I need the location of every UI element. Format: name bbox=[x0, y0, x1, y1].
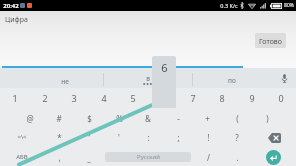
button[interactable]: Voice input bbox=[272, 68, 296, 88]
staticText: ! bbox=[207, 132, 210, 143]
staticText: _ bbox=[87, 152, 91, 163]
button[interactable]: не bbox=[0, 68, 103, 88]
staticText: " bbox=[87, 132, 91, 143]
staticText: , bbox=[58, 152, 61, 163]
staticText: - bbox=[177, 113, 180, 124]
button[interactable]: . bbox=[222, 147, 252, 166]
button[interactable]: 9 bbox=[237, 88, 267, 108]
staticText: 6 bbox=[161, 60, 168, 75]
button[interactable]: 6 bbox=[148, 88, 178, 108]
button[interactable]: Готово bbox=[255, 33, 286, 48]
button[interactable]: 2 bbox=[30, 88, 60, 108]
staticText: & bbox=[145, 113, 151, 124]
button[interactable]: # bbox=[44, 108, 74, 128]
staticText: 1 bbox=[12, 92, 18, 104]
button[interactable]: =\< bbox=[0, 127, 44, 147]
button[interactable]: Русский bbox=[105, 152, 191, 162]
staticText: # bbox=[56, 113, 62, 124]
staticText: ? bbox=[235, 132, 239, 143]
button[interactable]: по bbox=[192, 68, 272, 88]
button[interactable]: Enter bbox=[266, 150, 281, 165]
button[interactable]: 5 bbox=[118, 88, 148, 108]
staticText: в bbox=[146, 74, 150, 83]
button[interactable]: в bbox=[103, 68, 192, 88]
staticText: по bbox=[228, 76, 236, 85]
staticText: не bbox=[61, 77, 69, 86]
button[interactable]: 7 bbox=[178, 88, 208, 108]
button[interactable]: 4 bbox=[89, 88, 119, 108]
button[interactable]: 3 bbox=[59, 88, 89, 108]
staticText: 3 bbox=[71, 92, 77, 104]
button[interactable]: 0 bbox=[266, 88, 296, 108]
button[interactable]: " bbox=[74, 127, 104, 147]
staticText: / bbox=[207, 152, 210, 163]
staticText: АБВ bbox=[16, 153, 28, 161]
staticText: 0 bbox=[278, 92, 284, 104]
staticText: % bbox=[116, 113, 123, 124]
button[interactable]: ; bbox=[163, 127, 193, 147]
staticText: + bbox=[205, 113, 210, 124]
button[interactable]: АБВ bbox=[0, 147, 44, 166]
staticText: ( bbox=[236, 113, 239, 124]
staticText: 80% bbox=[284, 2, 294, 9]
staticText: ' bbox=[118, 132, 120, 143]
button[interactable]: % bbox=[104, 108, 134, 128]
staticText: Готово bbox=[259, 37, 282, 47]
button[interactable]: $ bbox=[74, 108, 104, 128]
staticText: . bbox=[236, 152, 239, 163]
staticText: 7 bbox=[190, 92, 196, 104]
staticText: 9 bbox=[249, 92, 255, 104]
button[interactable]: 1 bbox=[0, 88, 30, 108]
staticText: Русский bbox=[137, 153, 160, 161]
staticText: 2 bbox=[42, 92, 48, 104]
button[interactable]: _ bbox=[74, 147, 104, 166]
button[interactable]: + bbox=[192, 108, 222, 128]
button[interactable]: ) bbox=[252, 108, 282, 128]
button[interactable]: & bbox=[133, 108, 163, 128]
staticText: : bbox=[147, 132, 150, 143]
staticText: ; bbox=[177, 132, 180, 143]
staticText: $ bbox=[87, 113, 92, 124]
button[interactable]: / bbox=[193, 147, 223, 166]
button[interactable]: : bbox=[133, 127, 163, 147]
staticText: ) bbox=[266, 113, 269, 124]
button[interactable]: @ bbox=[15, 108, 45, 128]
staticText: Цифра bbox=[5, 15, 28, 25]
button[interactable]: ? bbox=[222, 127, 252, 147]
button[interactable]: 8 bbox=[207, 88, 237, 108]
staticText: 0.3 K/c bbox=[220, 2, 238, 9]
staticText: 5 bbox=[130, 92, 136, 104]
staticText: =\< bbox=[17, 133, 27, 141]
button[interactable]: ' bbox=[104, 127, 134, 147]
staticText: 8 bbox=[219, 92, 225, 104]
button[interactable]: ( bbox=[222, 108, 252, 128]
button[interactable]: - bbox=[163, 108, 193, 128]
staticText: 20:42 bbox=[3, 2, 19, 10]
button[interactable]: * bbox=[44, 127, 74, 147]
staticText: @ bbox=[26, 113, 34, 124]
button[interactable]: ! bbox=[193, 127, 223, 147]
staticText: 4 bbox=[101, 92, 107, 104]
staticText: * bbox=[57, 132, 62, 143]
button[interactable]: , bbox=[44, 147, 74, 166]
button[interactable]: Backspace bbox=[252, 128, 296, 147]
